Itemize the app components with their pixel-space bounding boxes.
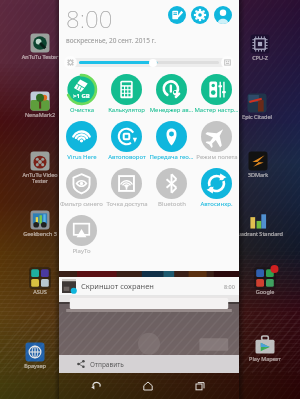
staticText: Geekbench 3: [14, 230, 66, 237]
button[interactable]: Режим полета: [194, 119, 239, 166]
staticText: Фильтр синего: [60, 200, 103, 208]
staticText: ASUS: [14, 288, 66, 295]
staticText: Режим полета: [196, 153, 238, 161]
button[interactable]: Калькулятор: [104, 72, 149, 119]
button[interactable]: Auto brightness: [64, 56, 77, 69]
staticText: PlayTo: [72, 247, 91, 255]
button[interactable]: Автосинхр.: [194, 166, 239, 213]
staticText: Virus Here: [67, 153, 97, 161]
staticText: AnTuTu Tester: [14, 53, 66, 60]
staticText: 8:00: [66, 2, 113, 35]
button[interactable]: Share: [77, 355, 239, 373]
staticText: Quadrant Standard: [232, 230, 284, 237]
staticText: воскресенье, 20 сент. 2015 г.: [66, 36, 156, 45]
button[interactable]: Автоповорот: [104, 119, 149, 166]
button[interactable]: Virus Here: [59, 119, 104, 166]
button[interactable]: Скриншот сохранен: [62, 277, 235, 295]
staticText: >1 GB: [73, 92, 90, 100]
button[interactable]: Передача геод...: [149, 119, 194, 166]
staticText: Передача геод...: [149, 153, 194, 161]
other: Share: [77, 360, 85, 368]
staticText: 3DMark: [232, 171, 284, 178]
button[interactable]: >1 GB: [59, 72, 104, 119]
button[interactable]: Home: [132, 373, 164, 399]
staticText: Play Маркет: [239, 355, 291, 362]
staticText: Точка доступа: [106, 200, 148, 208]
staticText: Менеджер авто...: [149, 106, 194, 114]
staticText: 8:00: [224, 283, 235, 290]
staticText: Скриншот сохранен: [81, 281, 224, 291]
staticText: Google: [239, 288, 291, 295]
staticText: Автоповорот: [108, 153, 146, 161]
button[interactable]: Settings: [191, 6, 209, 24]
staticText: Мастер настро...: [194, 106, 239, 114]
button[interactable]: Менеджер авто...: [149, 72, 194, 119]
staticText: Очистка: [70, 106, 94, 114]
button[interactable]: User profile: [214, 6, 232, 24]
button[interactable]: PlayTo: [59, 213, 104, 260]
button[interactable]: Точка доступа: [104, 166, 149, 213]
staticText: Браузер: [9, 362, 61, 369]
staticText: NenaMark2: [14, 111, 66, 118]
staticText: Bluetooth: [158, 200, 186, 208]
button[interactable]: Back: [80, 373, 112, 399]
button[interactable]: Bluetooth: [149, 166, 194, 213]
staticText: Отправить: [90, 360, 124, 369]
button[interactable]: Мастер настро...: [194, 72, 239, 119]
button[interactable]: Brightness options: [221, 56, 234, 69]
staticText: Автосинхр.: [200, 200, 233, 208]
button[interactable]: Edit quick settings: [168, 6, 186, 24]
staticText: Калькулятор: [108, 106, 145, 114]
button[interactable]: Фильтр синего: [59, 166, 104, 213]
staticText: AnTuTu Video Tester: [14, 171, 66, 185]
button[interactable]: Recent apps: [184, 373, 216, 399]
staticText: Epic Citadel: [231, 113, 283, 120]
staticText: CPU-Z: [234, 54, 286, 61]
